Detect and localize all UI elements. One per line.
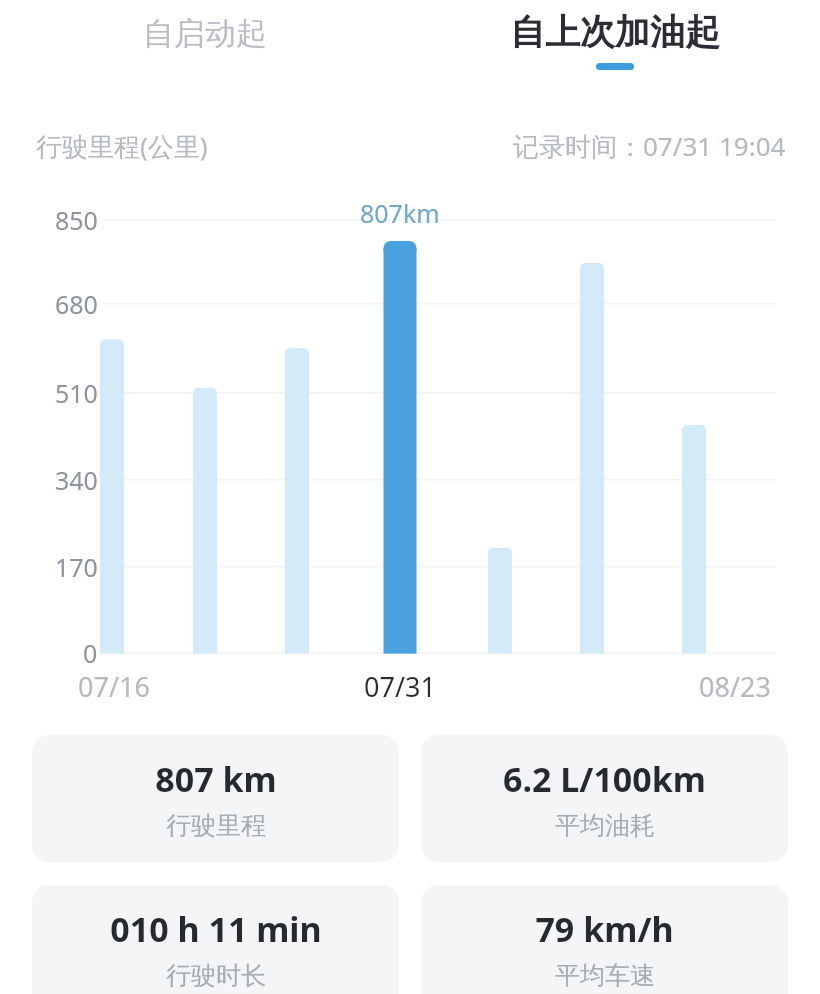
- staticText: 010 h 11 min: [110, 906, 322, 952]
- button[interactable]: 6.2 L/100km: [421, 735, 788, 862]
- button[interactable]: 自启动起: [0, 0, 410, 88]
- staticText: 807km: [360, 196, 440, 230]
- staticText: 680: [55, 287, 98, 321]
- staticText: 平均车速: [555, 960, 655, 991]
- button[interactable]: 807 km: [32, 735, 399, 862]
- staticText: 850: [55, 203, 98, 237]
- staticText: 平均油耗: [555, 810, 655, 841]
- staticText: 记录时间：07/31 19:04: [513, 128, 786, 164]
- other: Mileage bar chart: [0, 190, 820, 700]
- button[interactable]: 010 h 11 min: [32, 885, 399, 994]
- button[interactable]: 79 km/h: [421, 885, 788, 994]
- staticText: 行驶里程(公里): [36, 128, 208, 164]
- button[interactable]: 自上次加油起: [410, 0, 820, 88]
- staticText: 07/16: [78, 668, 150, 705]
- staticText: 510: [55, 376, 98, 410]
- staticText: 807 km: [155, 756, 277, 802]
- staticText: 6.2 L/100km: [503, 756, 706, 802]
- staticText: 0: [83, 636, 98, 670]
- staticText: 340: [55, 463, 98, 497]
- staticText: 自上次加油起: [510, 10, 720, 54]
- staticText: 07/31: [364, 668, 436, 705]
- staticText: 170: [55, 550, 98, 584]
- staticText: 08/23: [699, 668, 771, 705]
- staticText: 79 km/h: [535, 906, 674, 952]
- staticText: 行驶里程: [166, 810, 266, 841]
- staticText: 自启动起: [143, 14, 267, 53]
- staticText: 行驶时长: [166, 960, 266, 991]
